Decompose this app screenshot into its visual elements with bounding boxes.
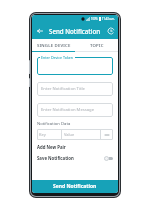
staticText: Value: [64, 132, 75, 137]
button[interactable]: [37, 57, 113, 75]
button[interactable]: Save Notification: [37, 155, 113, 161]
button[interactable]: Send Notification: [32, 180, 118, 193]
staticText: Enter Notification Message: [41, 107, 95, 113]
staticText: SINGLE DEVICE: [37, 42, 71, 48]
button[interactable]: Back: [34, 25, 45, 36]
button[interactable]: Key: [37, 129, 61, 140]
button[interactable]: TOPIC: [75, 39, 118, 51]
staticText: Save Notification: [37, 155, 104, 161]
button[interactable]: History: [105, 25, 116, 36]
button[interactable]: SINGLE DEVICE: [32, 39, 75, 51]
staticText: 100%: [91, 17, 98, 21]
button[interactable]: Remove pair: [101, 129, 113, 140]
staticText: Add New Pair: [37, 144, 66, 150]
staticText: Enter Notification Title: [41, 86, 85, 92]
staticText: Key: [39, 132, 46, 137]
button[interactable]: Value: [62, 129, 100, 140]
button[interactable]: Enter Notification Title: [37, 82, 113, 96]
staticText: 11:43 a.m.: [102, 17, 115, 21]
staticText: TOPIC: [90, 42, 104, 48]
staticText: Enter Device Token: [41, 55, 74, 60]
button[interactable]: Enter Notification Message: [37, 103, 113, 117]
staticText: Notification Data: [37, 121, 71, 127]
button[interactable]: Add New Pair: [37, 144, 66, 150]
staticText: Send Notification: [49, 27, 101, 35]
staticText: Send Notification: [53, 183, 97, 190]
